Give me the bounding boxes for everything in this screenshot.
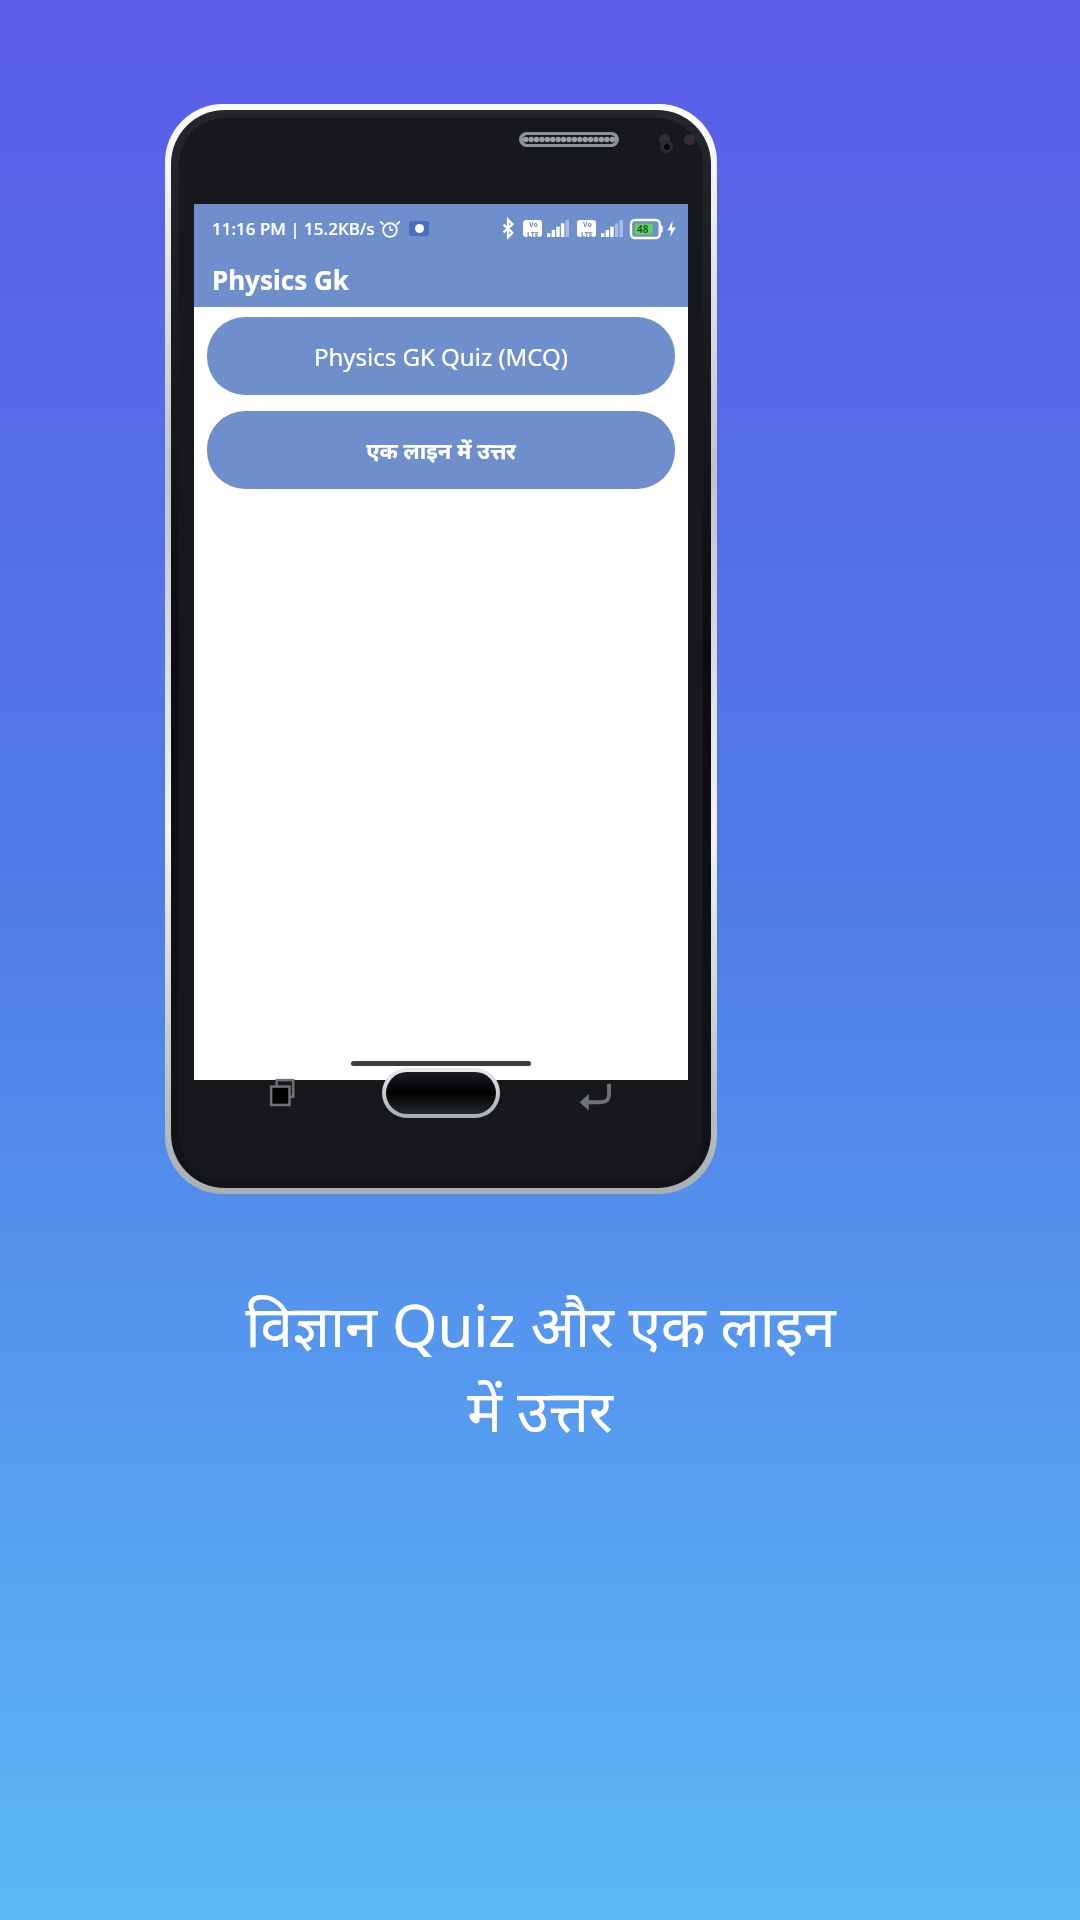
button[interactable]: Back	[575, 1070, 621, 1116]
staticText: में उत्तर	[467, 1370, 613, 1449]
staticText: Physics Gk	[212, 262, 349, 297]
staticText: LTE	[527, 230, 539, 237]
staticText: 48	[637, 222, 649, 236]
button[interactable]: Recents	[261, 1070, 307, 1116]
button[interactable]: Physics GK Quiz (MCQ)	[207, 317, 675, 395]
button[interactable]: एक लाइन में उत्तर	[207, 411, 675, 489]
staticText: 11:16 PM | 15.2KB/s	[212, 217, 375, 240]
staticText: Physics GK Quiz (MCQ)	[314, 340, 568, 373]
staticText: विज्ञान Quiz और एक लाइन	[245, 1285, 836, 1364]
staticText: Vo	[529, 220, 538, 230]
staticText: LTE	[581, 230, 593, 237]
staticText: Vo	[583, 220, 592, 230]
button[interactable]: Home	[382, 1068, 500, 1118]
staticText: एक लाइन में उत्तर	[366, 435, 516, 465]
